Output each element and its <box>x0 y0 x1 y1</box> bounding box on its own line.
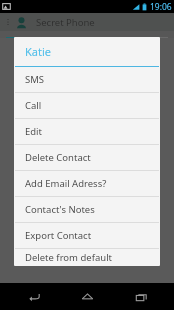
button[interactable]: Export Contact <box>14 223 160 248</box>
staticText: Delete Contact <box>25 151 91 164</box>
button[interactable]: Edit <box>14 119 160 144</box>
staticText: Call <box>25 99 42 112</box>
button[interactable]: Recent apps <box>121 283 161 310</box>
button[interactable]: Add Email Adress? <box>14 171 160 196</box>
button[interactable]: Delete Contact <box>14 145 160 170</box>
button[interactable]: Delete from default <box>14 249 160 266</box>
staticText: 19:06 <box>150 1 172 13</box>
button[interactable]: Call <box>14 93 160 118</box>
staticText: Katie <box>25 44 51 59</box>
button[interactable]: Back <box>14 283 54 310</box>
button[interactable]: SMS <box>14 67 160 92</box>
button[interactable]: Contact's Notes <box>14 197 160 222</box>
button[interactable]: More options <box>4 15 12 29</box>
staticText: SMS <box>25 73 45 86</box>
staticText: Export Contact <box>25 229 92 242</box>
staticText: Secret Phone <box>36 16 95 29</box>
staticText: Delete from default <box>25 251 113 264</box>
staticText: Contact's Notes <box>25 203 95 216</box>
button[interactable]: Home <box>67 283 107 310</box>
staticText: Edit <box>25 125 43 138</box>
staticText: Add Email Adress? <box>25 177 107 190</box>
